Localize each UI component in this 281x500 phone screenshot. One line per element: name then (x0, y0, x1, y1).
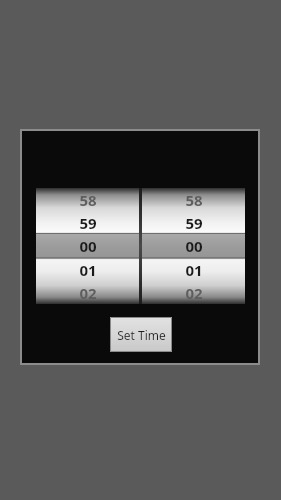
staticText: 59 (79, 213, 97, 233)
staticText: 02 (79, 283, 97, 303)
staticText: 59 (185, 213, 203, 233)
staticText: 02 (185, 283, 203, 303)
staticText: 58 (185, 190, 203, 210)
staticText: 00 (79, 236, 97, 256)
button[interactable]: 58 (36, 188, 139, 304)
staticText: 00 (185, 236, 203, 256)
staticText: Set Time (117, 327, 166, 343)
staticText: 01 (185, 260, 203, 280)
staticText: 01 (79, 260, 97, 280)
button[interactable]: Set Time (110, 317, 172, 352)
staticText: 58 (79, 190, 97, 210)
button[interactable]: 58 (142, 188, 245, 304)
